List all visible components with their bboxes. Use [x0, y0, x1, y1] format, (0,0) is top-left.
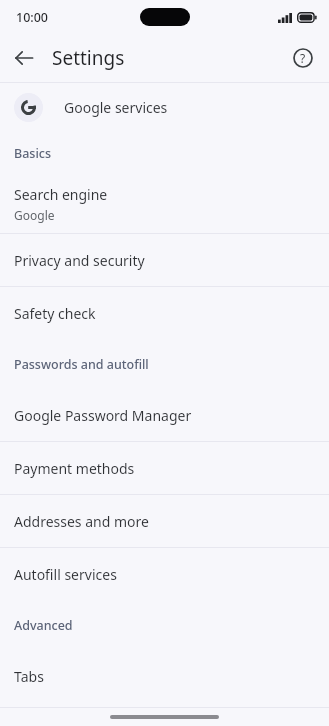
staticText: Safety check	[14, 304, 96, 323]
staticText: Google	[14, 207, 55, 223]
staticText: ?	[300, 50, 306, 66]
staticText: Advanced	[14, 617, 73, 634]
staticText: Basics	[14, 145, 51, 162]
staticText: Google services	[64, 98, 168, 117]
staticText: Payment methods	[14, 459, 135, 478]
button[interactable]: Navigate up	[6, 40, 42, 76]
staticText: Tabs	[14, 667, 44, 686]
staticText: Search engine	[14, 185, 108, 204]
button[interactable]: Google Password Manager	[0, 389, 329, 441]
button[interactable]: Addresses and more	[0, 495, 329, 547]
staticText: Privacy and security	[14, 251, 145, 270]
staticText: Google Password Manager	[14, 406, 192, 425]
button[interactable]: Help and feedback	[285, 40, 321, 76]
button[interactable]: Tabs	[0, 650, 329, 702]
button[interactable]: Privacy and security	[0, 234, 329, 286]
staticText: Settings	[52, 45, 125, 71]
button[interactable]: Autofill services	[0, 548, 329, 600]
button[interactable]: Safety check	[0, 287, 329, 339]
button[interactable]: Payment methods	[0, 442, 329, 494]
staticText: Addresses and more	[14, 512, 149, 531]
button[interactable]: Search engine	[0, 175, 329, 233]
staticText: Passwords and autofill	[14, 356, 149, 373]
button[interactable]: Google services	[0, 83, 329, 131]
staticText: Autofill services	[14, 565, 117, 584]
staticText: 10:00	[16, 9, 49, 26]
